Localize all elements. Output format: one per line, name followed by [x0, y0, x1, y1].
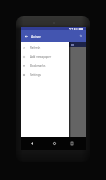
button[interactable]: Add newspaper	[21, 52, 69, 61]
staticText: Bookmarks	[30, 64, 46, 68]
button[interactable]: Search	[76, 30, 86, 42]
button[interactable]: Back	[22, 30, 31, 42]
button[interactable]	[69, 42, 86, 137]
staticText: Refresh	[30, 46, 41, 50]
button[interactable]: Bookmarks	[21, 61, 69, 70]
staticText: Settings	[30, 73, 41, 77]
button[interactable]: Settings	[21, 70, 69, 79]
staticText: Add newspaper	[30, 55, 52, 59]
button[interactable]: Refresh	[21, 43, 69, 52]
button[interactable]: Recents	[67, 138, 77, 148]
staticText: Aviser	[31, 34, 42, 39]
button[interactable]: Back	[27, 138, 37, 148]
button[interactable]: Home	[49, 138, 59, 148]
